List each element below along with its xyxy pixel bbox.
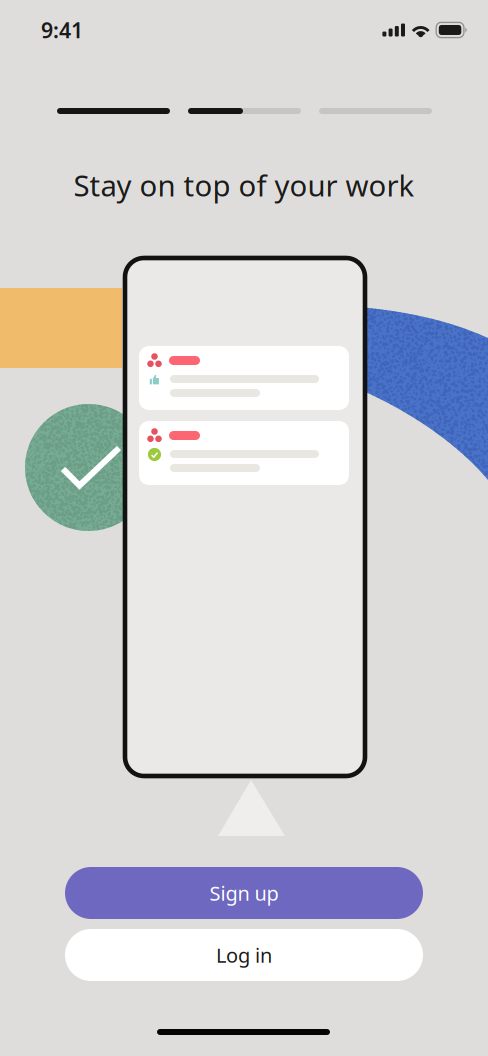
- staticText: 9:41: [41, 16, 83, 44]
- button[interactable]: Sign up: [65, 867, 423, 919]
- button[interactable]: Log in: [65, 929, 423, 981]
- staticText: Sign up: [209, 880, 278, 906]
- staticText: Log in: [216, 942, 272, 968]
- button[interactable]: Page 1, completed: [57, 108, 170, 114]
- staticText: Stay on top of your work: [73, 165, 414, 204]
- button[interactable]: Page 2, in progress: [188, 108, 301, 114]
